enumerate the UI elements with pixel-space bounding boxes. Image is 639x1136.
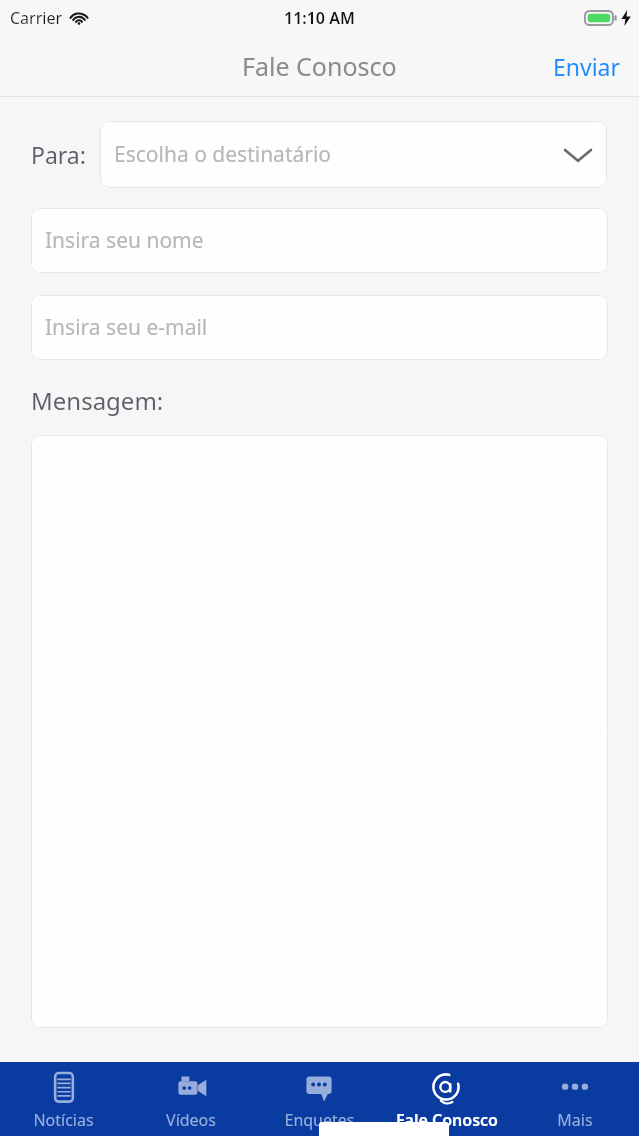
button[interactable]: Vídeos <box>127 1062 255 1136</box>
staticText: Mais <box>557 1109 593 1131</box>
staticText: Vídeos <box>166 1109 216 1131</box>
button[interactable]: Insira seu e-mail <box>31 295 608 360</box>
button[interactable]: Mais <box>511 1062 639 1136</box>
button[interactable]: Insira seu nome <box>31 208 608 273</box>
staticText: Para: <box>31 139 86 170</box>
staticText: Insira seu e-mail <box>45 313 208 342</box>
staticText: Escolha o destinatário <box>114 140 565 169</box>
staticText: Fale Conosco <box>242 49 397 83</box>
staticText: Mensagem: <box>31 384 164 417</box>
staticText: Insira seu nome <box>45 226 204 255</box>
staticText: Enviar <box>553 51 621 82</box>
button[interactable]: Notícias <box>0 1062 127 1136</box>
staticText: Carrier <box>10 7 63 29</box>
staticText: 11:10 AM <box>284 7 355 29</box>
staticText: Fale Conosco <box>396 1109 498 1131</box>
button[interactable]: Enviar <box>535 41 639 92</box>
staticText: Enquetes <box>284 1109 355 1131</box>
staticText: Notícias <box>33 1109 94 1131</box>
button[interactable]: Enquetes <box>255 1062 383 1136</box>
button[interactable]: Escolha o destinatário <box>100 121 607 188</box>
button[interactable]: Fale Conosco <box>383 1062 511 1136</box>
